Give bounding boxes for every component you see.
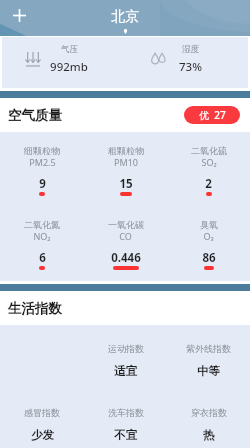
staticText: PM2.5	[29, 156, 56, 168]
staticText: 运动指数	[108, 343, 144, 354]
staticText: 紫外线指数	[186, 343, 231, 354]
button[interactable]: 细颗粒物	[0, 132, 84, 208]
staticText: 粗颗粒物	[108, 145, 144, 156]
button[interactable]: 气压	[2, 37, 125, 88]
staticText: 北京	[111, 8, 139, 26]
staticText: O₃	[203, 230, 214, 242]
button[interactable]: 臭氧	[167, 208, 250, 281]
staticText: 9	[39, 176, 46, 192]
staticText: 感冒指数	[24, 407, 60, 418]
staticText: 细颗粒物	[24, 145, 60, 156]
staticText: 二氧化氮	[24, 219, 60, 230]
staticText: 适宜	[114, 364, 137, 378]
staticText: 热	[203, 428, 215, 442]
button[interactable]: 优	[184, 106, 240, 124]
staticText: 中等	[197, 364, 220, 378]
staticText: PM10	[114, 156, 138, 168]
staticText: 27	[214, 108, 226, 122]
staticText: 洗车指数	[108, 407, 144, 418]
staticText: CO	[119, 230, 132, 242]
button[interactable]: 湿度	[125, 37, 248, 88]
staticText: 气压	[61, 44, 78, 55]
staticText: 湿度	[182, 44, 199, 55]
staticText: 6	[39, 250, 46, 266]
button[interactable]: 紫外线指数	[167, 325, 250, 389]
staticText: 不宜	[114, 428, 137, 442]
button[interactable]: 运动指数	[84, 325, 167, 389]
staticText: 生活指数	[8, 300, 62, 317]
button[interactable]: 一氧化碳	[84, 208, 167, 281]
button[interactable]: 二氧化氮	[0, 208, 84, 281]
staticText: NO₂	[33, 230, 51, 242]
button[interactable]: 感冒指数	[0, 389, 84, 448]
button[interactable]: 二氧化硫	[167, 132, 250, 208]
staticText: 73%	[179, 59, 202, 75]
staticText: 优	[199, 109, 209, 122]
staticText: 空气质量	[8, 107, 62, 124]
staticText: 0.446	[111, 250, 141, 266]
button[interactable]: Add city	[6, 2, 32, 28]
staticText: 臭氧	[200, 219, 218, 230]
staticText: 86	[202, 250, 216, 266]
button[interactable]: 粗颗粒物	[84, 132, 167, 208]
staticText: SO₂	[201, 156, 217, 168]
button[interactable]: 洗车指数	[84, 389, 167, 448]
staticText: 992mb	[50, 59, 88, 75]
staticText: 一氧化碳	[108, 219, 144, 230]
button[interactable]: 穿衣指数	[167, 389, 250, 448]
staticText: 二氧化硫	[191, 145, 227, 156]
staticText: 15	[119, 176, 133, 192]
staticText: 2	[205, 176, 212, 192]
staticText: 少发	[31, 428, 54, 442]
staticText: 穿衣指数	[191, 407, 227, 418]
